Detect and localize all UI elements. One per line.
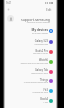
staticText: Watch6 — [18, 58, 48, 62]
staticText: Galaxy S23 — [18, 39, 48, 43]
staticText: all of your devices — [24, 32, 48, 35]
staticText: Galaxy Tab — [18, 68, 48, 72]
staticText: samsung account settings — [20, 21, 50, 24]
button[interactable] — [4, 37, 57, 47]
staticText: 1 day — [18, 101, 48, 104]
staticText: Edit — [46, 8, 52, 12]
button[interactable] — [4, 57, 57, 67]
staticText: offline since 3 days — [18, 72, 48, 75]
button[interactable]: Profile — [7, 15, 14, 22]
staticText: Things — [18, 78, 48, 82]
button[interactable]: Edit — [45, 6, 53, 13]
button[interactable]: Back — [5, 6, 12, 13]
staticText: 9:41 — [6, 1, 12, 5]
staticText: support.samsung — [20, 17, 50, 22]
staticText: last seen 2 hours — [18, 52, 48, 55]
button[interactable]: Add device — [49, 29, 53, 33]
staticText: battery level at 80 percent now — [18, 62, 48, 65]
staticText: charging on dock — [18, 91, 48, 94]
staticText: Fit3 — [18, 88, 48, 92]
staticText: connected now — [18, 43, 48, 46]
button[interactable] — [4, 86, 57, 96]
button[interactable] — [4, 47, 57, 57]
staticText: My devices — [24, 28, 48, 32]
staticText: Book4 — [18, 97, 48, 101]
staticText: Buds2 Pro — [18, 49, 48, 53]
button[interactable] — [4, 76, 57, 86]
button[interactable] — [4, 66, 57, 76]
button[interactable] — [4, 96, 57, 106]
staticText: 3 home devices linked here — [18, 81, 48, 84]
